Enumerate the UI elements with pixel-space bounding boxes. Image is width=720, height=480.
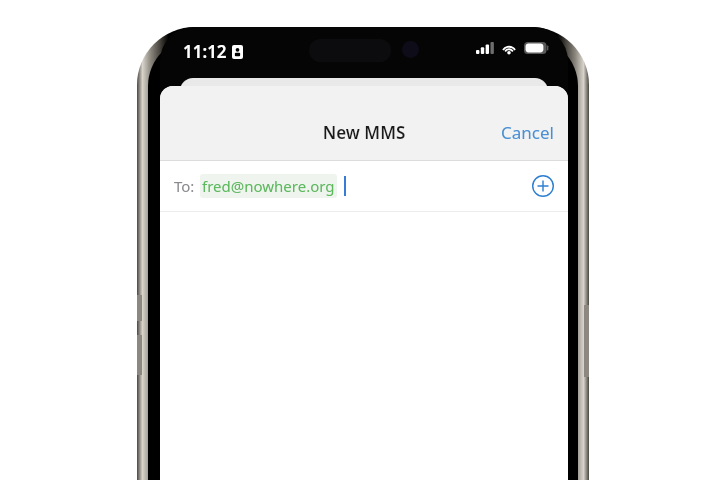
button[interactable]: Cancel	[487, 113, 568, 152]
staticText: Cancel	[501, 121, 554, 144]
staticText: To:	[174, 176, 195, 196]
staticText: New MMS	[160, 121, 568, 144]
button[interactable]: fred@nowhere.org	[200, 174, 337, 198]
staticText: fred@nowhere.org	[202, 176, 335, 196]
button[interactable]: Add contact	[518, 165, 568, 207]
staticText: 11:12	[183, 40, 227, 63]
